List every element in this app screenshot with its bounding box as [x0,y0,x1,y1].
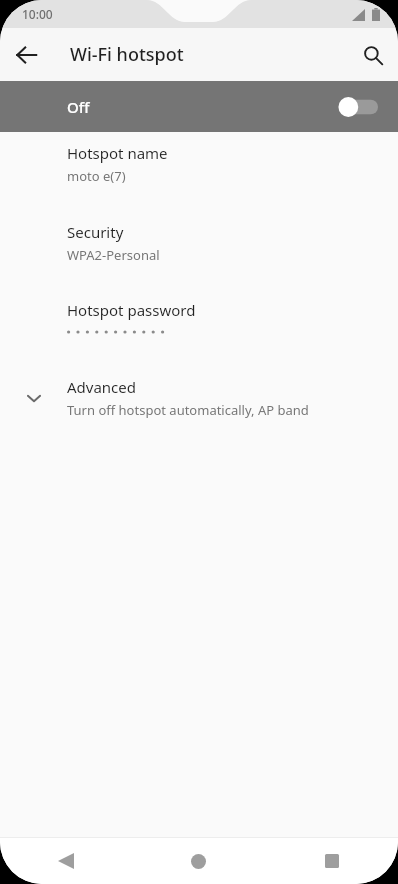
button[interactable]: Hotspot name [0,143,398,185]
button[interactable]: Advanced [0,376,398,420]
staticText: Wi-Fi hotspot [70,42,184,67]
button[interactable]: Search [351,33,395,77]
button[interactable]: Security [0,222,398,264]
staticText: WPA2-Personal [67,246,160,264]
button[interactable]: Off [0,81,398,132]
button[interactable]: Back [0,838,132,884]
staticText: Security [67,222,124,242]
button[interactable]: Home [132,838,265,884]
staticText: moto e(7) [67,167,126,185]
staticText: Hotspot password [67,300,196,320]
button[interactable]: Back [5,33,49,77]
staticText: Hotspot name [67,143,168,163]
button[interactable]: Hotspot password [0,300,398,342]
button[interactable]: Recent apps [265,838,398,884]
staticText: 10:00 [22,6,53,22]
staticText: Turn off hotspot automatically, AP band [67,401,309,419]
staticText: Off [67,97,90,117]
staticText: Advanced [67,377,137,397]
